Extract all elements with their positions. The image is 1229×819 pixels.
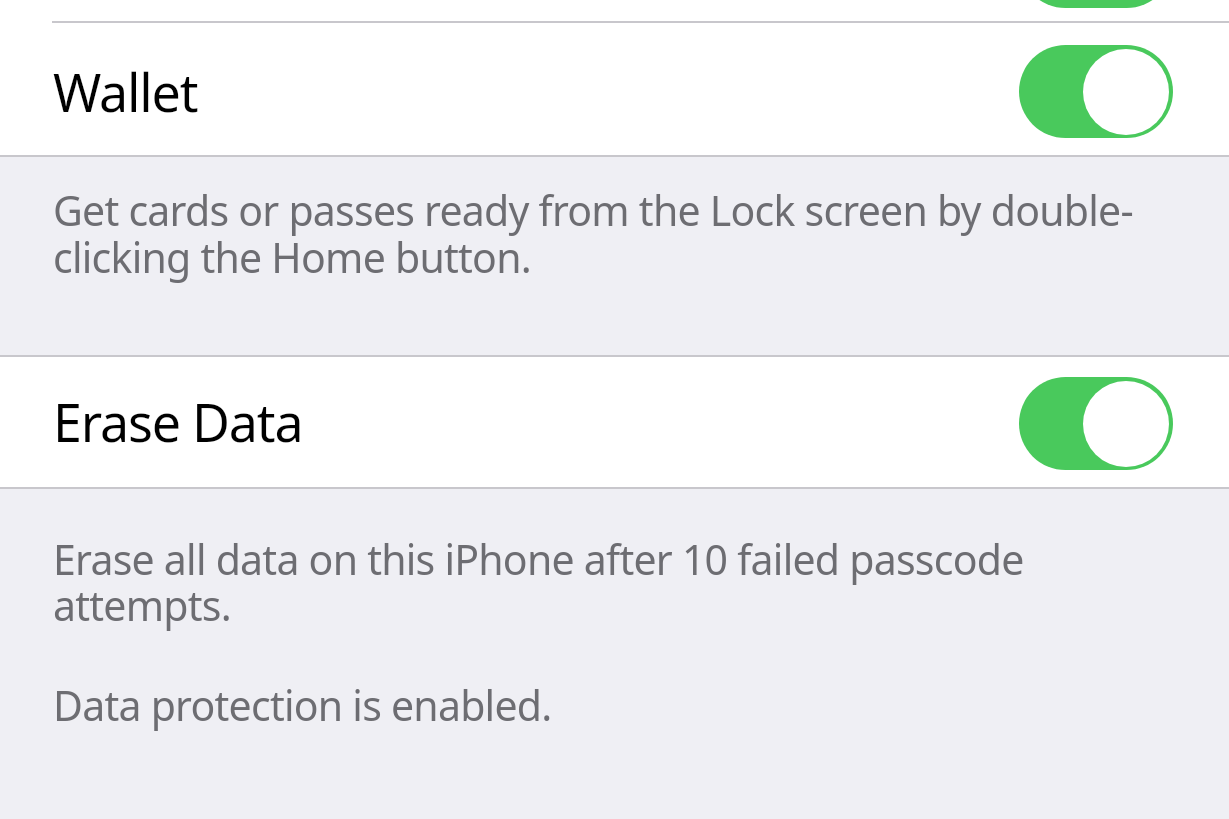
staticText: Wallet <box>53 56 198 127</box>
staticText: clicking the Home button. <box>53 229 531 285</box>
button[interactable] <box>1019 45 1173 138</box>
staticText: Data protection is enabled. <box>53 677 552 733</box>
button[interactable] <box>1019 377 1173 470</box>
button[interactable] <box>0 357 1229 487</box>
staticText: Get cards or passes ready from the Lock … <box>53 182 1133 238</box>
staticText: Erase all data on this iPhone after 10 f… <box>53 531 1024 587</box>
staticText: attempts. <box>53 577 231 633</box>
staticText: Erase Data <box>53 386 303 457</box>
button[interactable] <box>0 23 1229 156</box>
